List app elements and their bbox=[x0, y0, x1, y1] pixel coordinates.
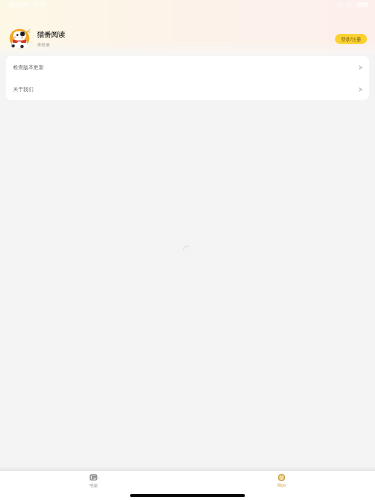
staticText: 我的 bbox=[277, 483, 286, 488]
other: 用户头像 bbox=[9, 28, 30, 49]
button[interactable]: 关于我们 bbox=[6, 78, 369, 100]
staticText: 检查版本更新 bbox=[13, 64, 44, 70]
staticText: 登录/注册 bbox=[341, 36, 362, 42]
button[interactable]: 用户头像 bbox=[9, 28, 65, 49]
button[interactable]: 登录/注册 bbox=[335, 34, 367, 44]
staticText: 未登录 bbox=[37, 42, 50, 47]
button[interactable]: 书架 bbox=[0, 472, 187, 490]
button[interactable]: 检查版本更新 bbox=[6, 56, 369, 78]
staticText: 书架 bbox=[89, 483, 98, 488]
staticText: 猫番阅读 bbox=[37, 30, 65, 39]
staticText: 关于我们 bbox=[13, 86, 34, 92]
button[interactable]: 我的 bbox=[187, 472, 375, 490]
